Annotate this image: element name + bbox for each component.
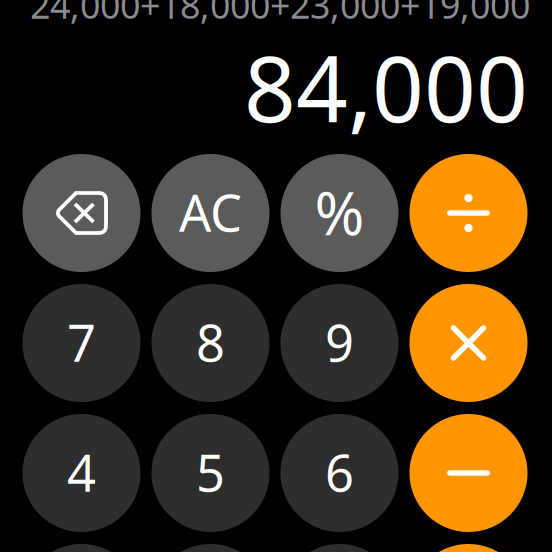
staticText: 7 — [67, 307, 96, 376]
button[interactable]: 7 — [22, 284, 140, 402]
staticText: % — [314, 171, 364, 253]
staticText: 24,000+18,000+23,000+19,000 — [30, 0, 530, 29]
button[interactable]: 6 — [280, 414, 398, 532]
staticText: 6 — [325, 437, 354, 506]
button[interactable]: Multiply — [409, 284, 527, 402]
button[interactable]: 5 — [151, 414, 269, 532]
button[interactable]: 9 — [280, 284, 398, 402]
staticText: 4 — [67, 437, 96, 506]
button[interactable]: 8 — [151, 284, 269, 402]
staticText: 5 — [196, 437, 225, 506]
button[interactable]: % — [280, 154, 398, 272]
button[interactable]: 3 — [280, 544, 398, 552]
button[interactable]: 2 — [151, 544, 269, 552]
button[interactable]: Add — [409, 544, 527, 552]
staticText: 9 — [325, 307, 354, 376]
button[interactable]: Divide — [409, 154, 527, 272]
staticText: AC — [179, 177, 242, 246]
button[interactable]: 4 — [22, 414, 140, 532]
staticText: 84,000 — [244, 25, 528, 149]
staticText: 8 — [196, 307, 225, 376]
button[interactable]: Delete — [22, 154, 140, 272]
button[interactable]: 1 — [22, 544, 140, 552]
button[interactable]: AC — [151, 154, 269, 272]
button[interactable]: Subtract — [409, 414, 527, 532]
